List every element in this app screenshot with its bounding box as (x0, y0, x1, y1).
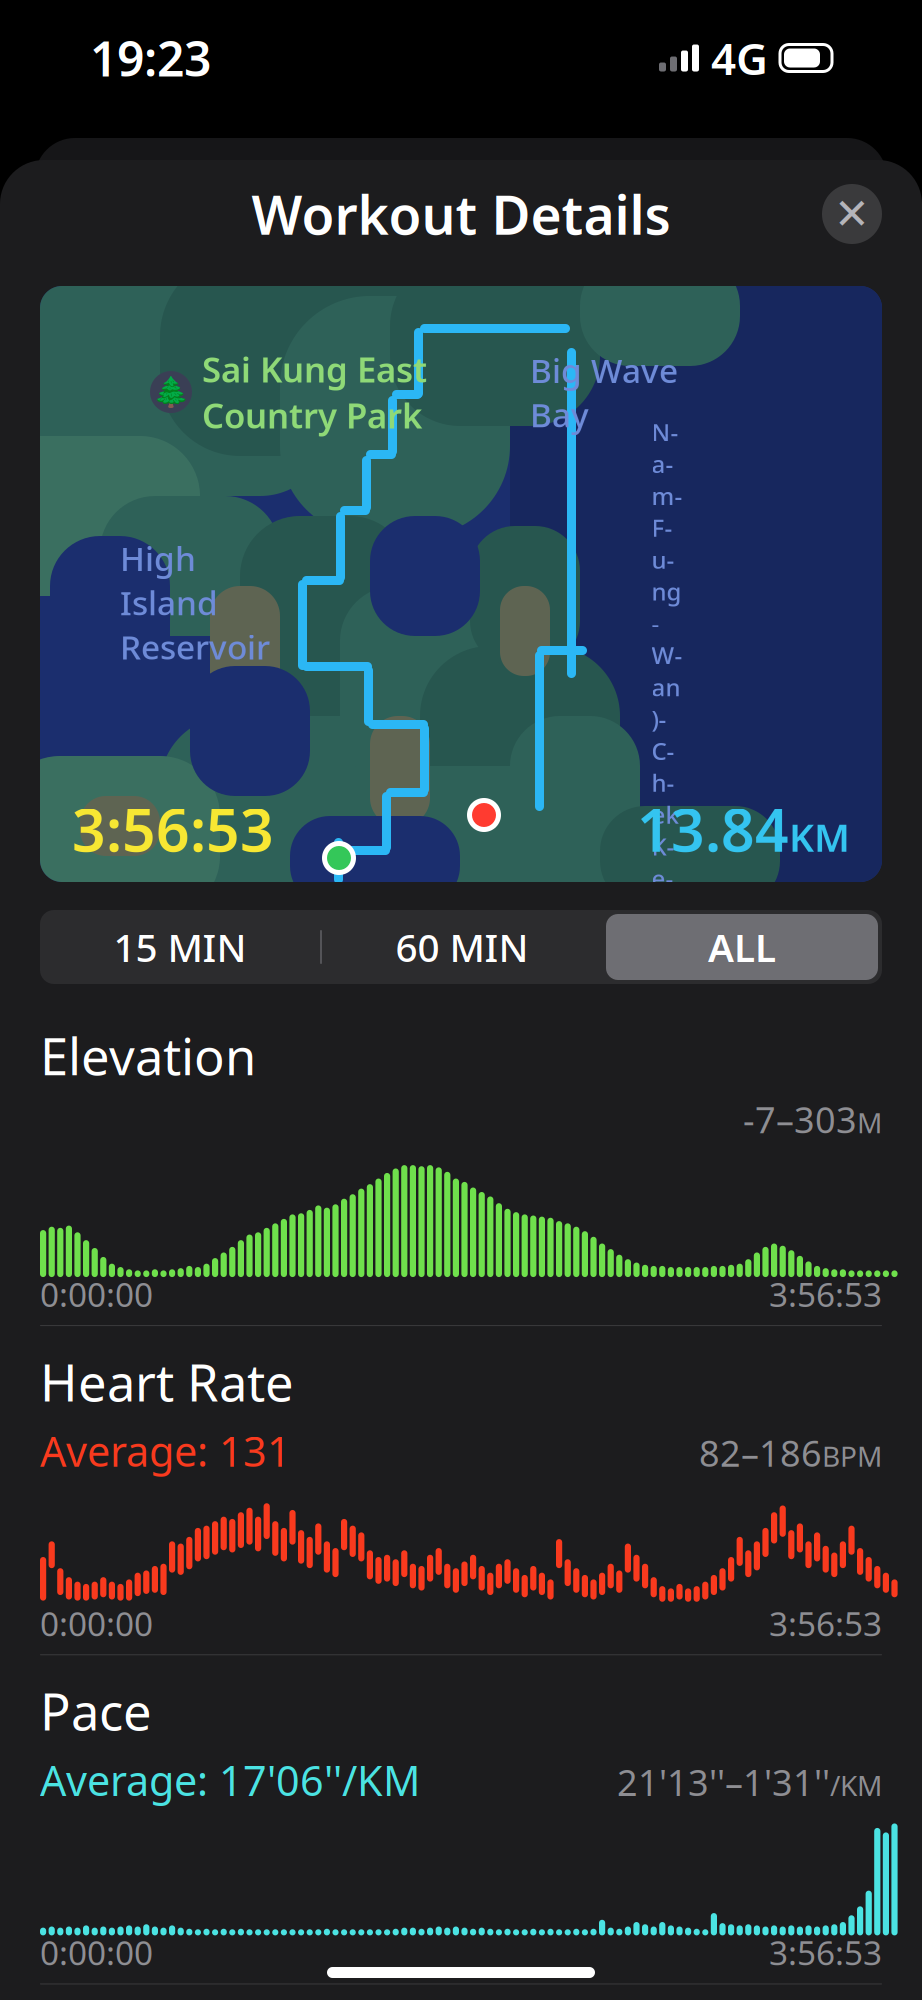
staticText: BPM (822, 1437, 882, 1475)
staticText: -7–303 (743, 1095, 857, 1143)
staticText: 15 MIN (113, 921, 246, 973)
staticText: 4G (711, 29, 768, 87)
staticText: Sai Kung East Country Park (202, 346, 427, 438)
staticText: High Island Reservoir (120, 536, 270, 669)
staticText: 3:56:53 (769, 1930, 882, 1975)
staticText: 3:56:53 (769, 1272, 882, 1316)
staticText: 13.84 (637, 790, 789, 868)
staticText: 3:56:53 (72, 790, 274, 868)
staticText: 0:00:00 (40, 1930, 153, 1975)
staticText: 0:00:00 (40, 1272, 153, 1316)
staticText: 60 MIN (395, 921, 528, 973)
staticText: 21'13''–1'31'' (617, 1758, 830, 1806)
staticText: Big Wave Bay (530, 348, 678, 436)
staticText: Workout Details (251, 179, 670, 249)
staticText: ✕ (834, 190, 870, 238)
staticText: 19:23 (90, 26, 211, 90)
staticText: M (857, 1104, 882, 1141)
staticText: 0:00:00 (40, 1601, 153, 1645)
staticText: KM (789, 811, 850, 862)
staticText: ALL (708, 921, 776, 973)
staticText: Pace (40, 1677, 152, 1745)
staticText: 🌲 (152, 375, 189, 409)
button[interactable]: 15 MIN (40, 910, 882, 984)
staticText: Heart Rate (40, 1348, 294, 1415)
button[interactable]: Close (822, 184, 882, 244)
staticText: /KM (830, 1767, 882, 1804)
staticText: 82–186 (699, 1429, 822, 1477)
staticText: Elevation (40, 1022, 256, 1089)
staticText: Average: 131 (40, 1423, 291, 1478)
staticText: Nam-Fung-Wan)-Chek Keng (651, 416, 682, 926)
staticText: Average: 17'06''/KM (40, 1752, 420, 1807)
staticText: ALL (708, 921, 776, 973)
staticText: 3:56:53 (769, 1601, 882, 1645)
